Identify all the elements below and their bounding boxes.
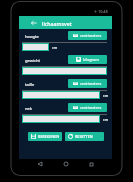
button[interactable]: BEREKENEN [28, 132, 62, 141]
button[interactable]: Back [27, 16, 41, 29]
staticText: cm [52, 45, 58, 50]
staticText: centimeters [80, 33, 102, 38]
staticText: 10:48 [98, 9, 108, 14]
button[interactable]: centimeters [68, 31, 107, 40]
staticText: hoogte [25, 34, 39, 40]
button[interactable]: centimeters [68, 79, 107, 88]
staticText: gewicht [25, 58, 40, 64]
button[interactable]: Recents [86, 159, 97, 169]
button[interactable]: centimeters [68, 103, 107, 112]
staticText: cm [103, 93, 109, 98]
staticText: centimeters [80, 105, 102, 110]
button[interactable]: kilogram [68, 55, 107, 64]
staticText: taille [25, 82, 35, 88]
staticText: RESETTEN [75, 134, 93, 139]
button[interactable]: Back [34, 159, 45, 169]
staticText: BEREKENEN [38, 134, 60, 139]
button[interactable]: Home [60, 159, 71, 169]
staticText: nek [25, 106, 33, 112]
staticText: kilogram [83, 57, 99, 62]
staticText: centimeters [80, 81, 102, 86]
staticText: lichaamsvet [42, 20, 72, 27]
button[interactable]: RESETTEN [65, 132, 104, 141]
staticText: cm [103, 117, 109, 122]
